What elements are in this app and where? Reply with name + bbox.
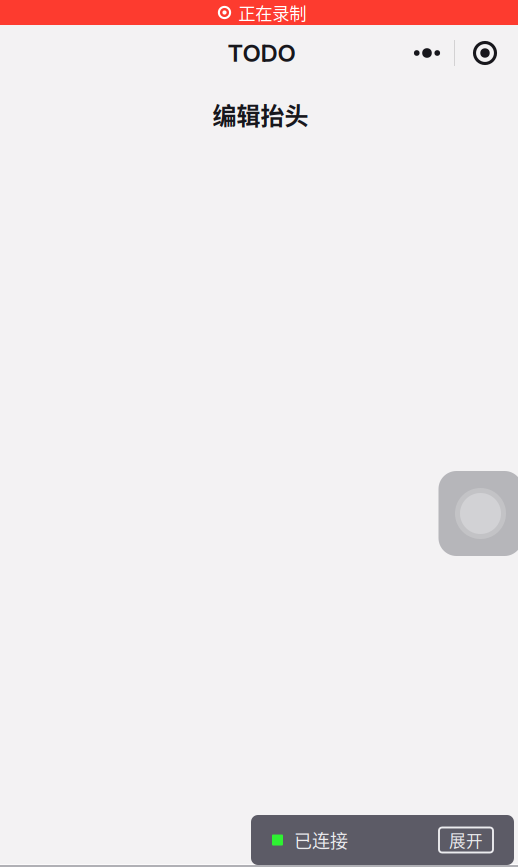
staticText: 展开 [449,828,483,852]
button[interactable]: More [400,32,454,74]
button[interactable]: Close mini program [455,32,515,74]
staticText: 正在录制 [238,0,306,25]
button[interactable]: 展开 [439,827,493,852]
staticText: 编辑抬头 [212,97,308,132]
staticText: 已连接 [294,827,348,853]
staticText: TODO [227,38,295,67]
button[interactable]: Floating assistant [438,471,518,556]
button[interactable]: 已连接 [251,815,514,865]
